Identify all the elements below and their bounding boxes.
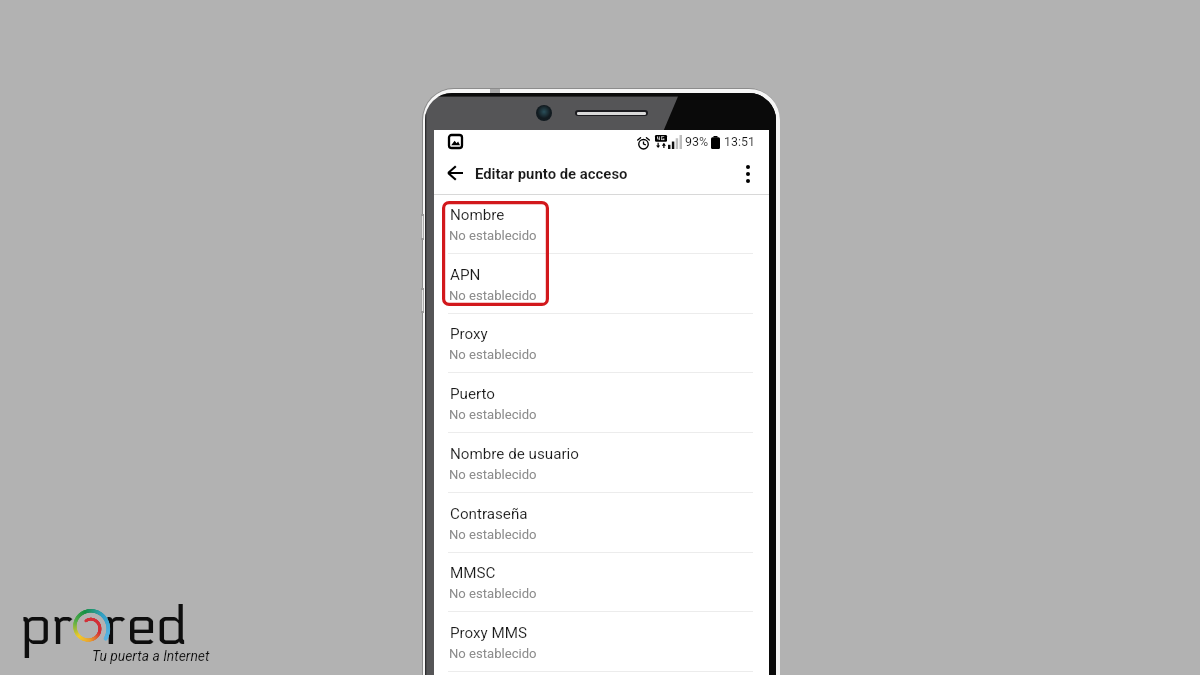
staticText: 13:51 <box>724 134 755 149</box>
staticText: No establecido <box>449 288 537 303</box>
staticText: No establecido <box>449 586 537 601</box>
button[interactable]: Back <box>438 156 471 189</box>
staticText: Proxy <box>450 325 488 343</box>
staticText: Editar punto de acceso <box>475 165 628 182</box>
button[interactable]: APN <box>434 254 769 314</box>
button[interactable]: More options <box>731 157 764 190</box>
button[interactable]: MMSC <box>434 552 769 612</box>
staticText: Proxy MMS <box>450 624 528 642</box>
staticText: No establecido <box>449 407 537 422</box>
staticText: Tu puerta a Internet <box>92 648 210 664</box>
button[interactable]: Proxy MMS <box>434 612 769 672</box>
staticText: Contraseña <box>450 505 528 523</box>
staticText: Nombre de usuario <box>450 445 579 463</box>
staticText: Puerto <box>450 385 496 403</box>
staticText: No establecido <box>449 527 537 542</box>
button[interactable]: Contraseña <box>434 493 769 553</box>
button[interactable]: Nombre de usuario <box>434 433 769 493</box>
button[interactable]: Puerto <box>434 373 769 433</box>
button[interactable]: Proxy <box>434 313 769 373</box>
button[interactable]: Nombre <box>434 194 769 254</box>
staticText: APN <box>450 266 481 284</box>
staticText: Nombre <box>450 206 505 224</box>
staticText: No establecido <box>449 228 537 243</box>
staticText: No establecido <box>449 347 537 362</box>
staticText: red <box>104 595 188 659</box>
staticText: pr <box>20 595 74 659</box>
staticText: No establecido <box>449 467 537 482</box>
staticText: No establecido <box>449 646 537 661</box>
staticText: 93% <box>685 134 709 149</box>
staticText: MMSC <box>450 564 496 582</box>
